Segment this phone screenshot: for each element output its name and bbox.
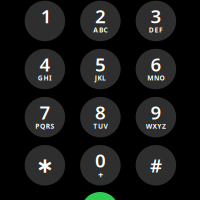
button[interactable]: 2 bbox=[80, 1, 121, 41]
staticText: PQRS bbox=[35, 122, 55, 130]
button[interactable]: 7 bbox=[25, 97, 65, 137]
button[interactable]: 6 bbox=[136, 49, 176, 89]
staticText: + bbox=[98, 168, 103, 181]
staticText: 8 bbox=[95, 100, 106, 125]
staticText: 5 bbox=[95, 52, 106, 77]
staticText: 7 bbox=[39, 100, 50, 125]
button[interactable]: 3 bbox=[136, 1, 176, 41]
staticText: 2 bbox=[95, 4, 106, 28]
button[interactable]: Call bbox=[81, 192, 119, 200]
staticText: 1 bbox=[41, 4, 52, 28]
staticText: 4 bbox=[39, 52, 50, 77]
staticText: MNO bbox=[147, 73, 164, 82]
staticText: 0 bbox=[95, 148, 106, 173]
button[interactable]: 9 bbox=[136, 97, 176, 137]
button[interactable]: 5 bbox=[80, 49, 121, 89]
staticText: ∗ bbox=[36, 153, 54, 177]
button[interactable]: 8 bbox=[80, 97, 121, 137]
staticText: TUV bbox=[93, 122, 107, 130]
staticText: WXYZ bbox=[146, 122, 166, 130]
staticText: 3 bbox=[150, 4, 161, 28]
staticText: GHI bbox=[38, 73, 52, 82]
button[interactable]: Star bbox=[25, 145, 65, 185]
button[interactable]: 0 bbox=[80, 145, 121, 185]
button[interactable]: 4 bbox=[25, 49, 65, 89]
staticText: 9 bbox=[150, 100, 161, 125]
button[interactable]: 1 bbox=[25, 1, 65, 41]
staticText: DEF bbox=[149, 25, 163, 34]
staticText: 6 bbox=[150, 52, 161, 77]
staticText: JKL bbox=[95, 73, 106, 82]
staticText: ABC bbox=[93, 25, 107, 34]
button[interactable]: Pound bbox=[136, 145, 176, 185]
staticText: # bbox=[150, 153, 162, 178]
